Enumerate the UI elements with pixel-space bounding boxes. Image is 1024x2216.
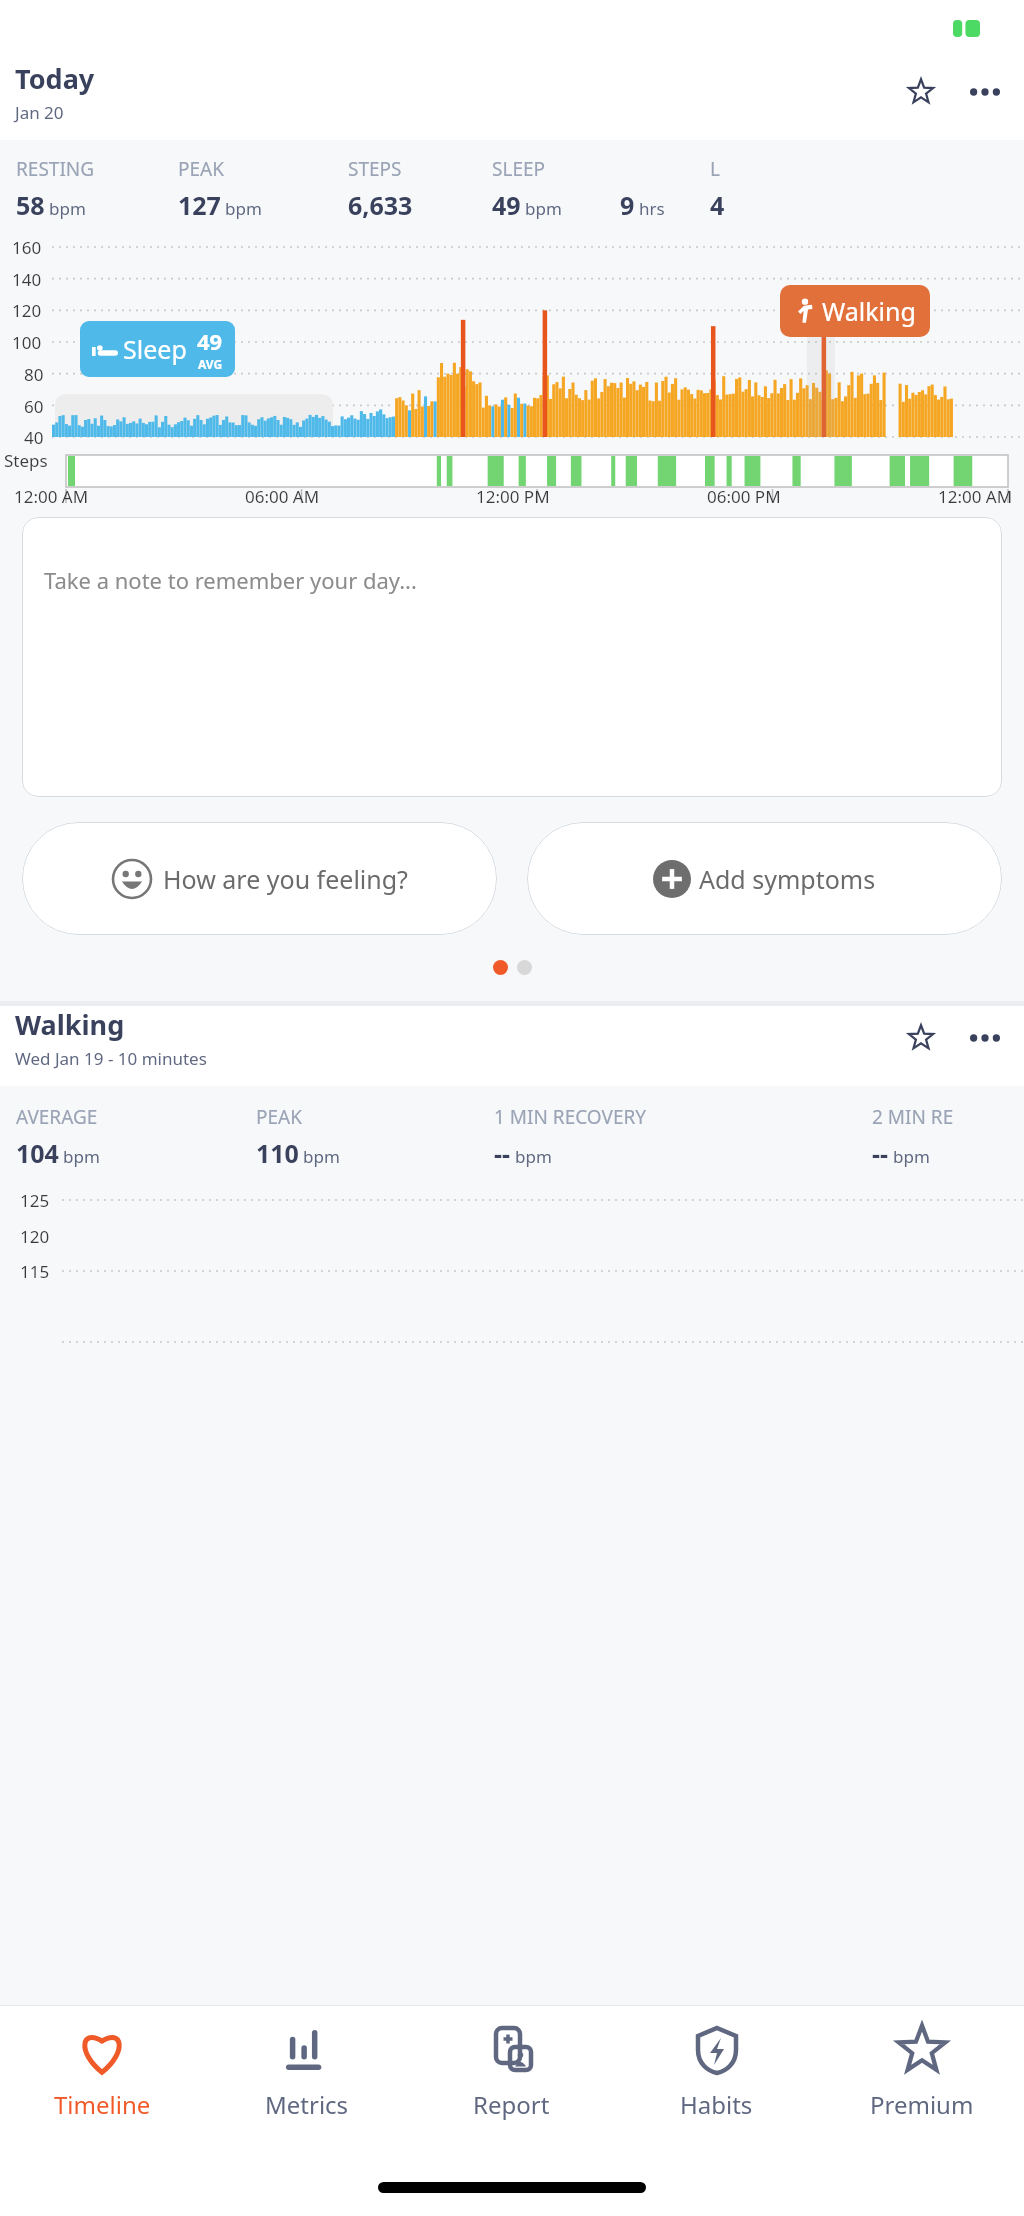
staticText: 104: [16, 1136, 59, 1170]
staticText: Metrics: [265, 2088, 349, 2121]
staticText: hrs: [639, 197, 665, 220]
staticText: 115: [20, 1260, 50, 1283]
staticText: 4: [710, 188, 725, 222]
button[interactable]: More options: [961, 1014, 1009, 1062]
staticText: Walking: [822, 294, 916, 328]
staticText: 80: [24, 363, 44, 386]
button[interactable]: Favorite: [897, 1014, 945, 1062]
button[interactable]: Take a note to remember your day...: [22, 517, 1002, 797]
staticText: L: [710, 156, 720, 182]
staticText: Jan 20: [15, 101, 64, 124]
staticText: bpm: [225, 197, 262, 220]
staticText: 140: [12, 268, 42, 291]
staticText: 60: [24, 395, 44, 418]
staticText: 12:00 AM: [938, 485, 1013, 508]
staticText: 40: [24, 426, 44, 449]
staticText: bpm: [49, 197, 86, 220]
staticText: PEAK: [256, 1104, 302, 1130]
staticText: Report: [473, 2088, 550, 2121]
staticText: bpm: [525, 197, 562, 220]
staticText: --: [872, 1136, 889, 1170]
button[interactable]: Sleep: [92, 326, 223, 372]
staticText: 120: [12, 299, 42, 322]
staticText: 120: [20, 1225, 50, 1248]
staticText: Premium: [870, 2088, 974, 2121]
staticText: 12:00 PM: [476, 485, 550, 508]
staticText: 49: [492, 188, 521, 222]
staticText: 49: [197, 326, 223, 356]
button[interactable]: Metrics: [204, 2006, 409, 2158]
staticText: 2 MIN RE: [872, 1104, 954, 1130]
staticText: Today: [15, 60, 95, 97]
staticText: 06:00 AM: [245, 485, 320, 508]
staticText: Habits: [680, 2088, 753, 2121]
staticText: 58: [16, 188, 45, 222]
staticText: 127: [178, 188, 221, 222]
staticText: Sleep: [123, 332, 187, 366]
button[interactable]: Favorite: [897, 68, 945, 116]
button[interactable]: Walking: [794, 294, 916, 328]
button[interactable]: Premium: [819, 2006, 1024, 2158]
staticText: 9: [620, 188, 635, 222]
staticText: Take a note to remember your day...: [44, 565, 417, 595]
button[interactable]: More options: [961, 68, 1009, 116]
staticText: AVG: [198, 356, 223, 372]
staticText: 1 MIN RECOVERY: [494, 1104, 647, 1130]
staticText: 06:00 PM: [707, 485, 781, 508]
staticText: PEAK: [178, 156, 224, 182]
staticText: 100: [12, 331, 42, 354]
button[interactable]: Report: [409, 2006, 614, 2158]
button[interactable]: How are you feeling?: [22, 822, 497, 935]
staticText: Wed Jan 19 - 10 minutes: [15, 1047, 207, 1070]
staticText: SLEEP: [492, 156, 546, 182]
staticText: Walking: [15, 1006, 125, 1043]
button[interactable]: Timeline: [0, 2006, 204, 2158]
staticText: How are you feeling?: [163, 862, 408, 896]
button[interactable]: Add symptoms: [527, 822, 1002, 935]
staticText: Timeline: [54, 2088, 151, 2121]
staticText: 110: [256, 1136, 299, 1170]
staticText: Steps: [4, 449, 48, 472]
button[interactable]: Habits: [614, 2006, 819, 2158]
staticText: AVERAGE: [16, 1104, 98, 1130]
staticText: 125: [20, 1189, 50, 1212]
staticText: 12:00 AM: [14, 485, 89, 508]
staticText: STEPS: [348, 156, 402, 182]
staticText: --: [494, 1136, 511, 1170]
staticText: bpm: [515, 1145, 552, 1168]
staticText: 6,633: [348, 188, 413, 222]
staticText: Add symptoms: [699, 862, 876, 896]
staticText: bpm: [63, 1145, 100, 1168]
staticText: bpm: [303, 1145, 340, 1168]
staticText: 160: [12, 236, 42, 259]
staticText: bpm: [893, 1145, 930, 1168]
staticText: RESTING: [16, 156, 95, 182]
